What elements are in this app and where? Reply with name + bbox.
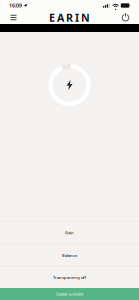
- button[interactable]: Transparency off: [0, 267, 139, 288]
- button[interactable]: Gain: [0, 222, 139, 244]
- staticText: Gain: [65, 230, 74, 235]
- button[interactable]: Power: [112, 11, 139, 24]
- staticText: Balance: [62, 253, 77, 258]
- staticText: E A R I N: [49, 10, 90, 25]
- button[interactable]: Update available: [0, 288, 139, 300]
- button[interactable]: Balance: [0, 245, 139, 266]
- staticText: Update available: [55, 291, 83, 297]
- staticText: Transparency off: [53, 275, 86, 280]
- staticText: 16:09: [9, 2, 22, 9]
- button[interactable]: Menu: [0, 11, 27, 24]
